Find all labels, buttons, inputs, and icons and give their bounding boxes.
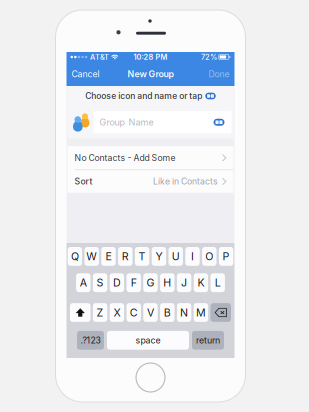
button[interactable]: T (135, 247, 149, 266)
staticText: Group Name (99, 117, 153, 128)
staticText: B (164, 306, 171, 319)
button[interactable]: I (185, 247, 200, 266)
button[interactable]: O (202, 247, 216, 266)
button[interactable]: space (107, 331, 189, 350)
button[interactable]: Cancel (66, 62, 104, 86)
staticText: Choose icon and name or tap (85, 91, 202, 101)
staticText: U (172, 250, 180, 263)
button[interactable]: .?123 (77, 331, 104, 350)
staticText: W (86, 250, 97, 263)
button[interactable]: E (101, 247, 116, 266)
staticText: 10:28 PM (133, 52, 167, 61)
button[interactable]: Done (203, 62, 234, 86)
staticText: No Contacts - Add Some (74, 153, 175, 163)
staticText: AT&T (90, 52, 109, 61)
staticText: S (97, 276, 104, 289)
staticText: C (130, 306, 138, 319)
button[interactable]: W (84, 247, 99, 266)
button[interactable]: X (110, 303, 124, 322)
button[interactable]: return (192, 331, 224, 350)
staticText: L (215, 276, 221, 289)
button[interactable]: Sort (67, 170, 233, 193)
button[interactable]: M (194, 303, 208, 322)
button[interactable]: Y (152, 247, 166, 266)
staticText: N (180, 306, 188, 319)
button[interactable]: G (143, 273, 158, 292)
button[interactable]: Pick from Contacts (213, 119, 231, 126)
button[interactable]: F (126, 273, 141, 292)
staticText: T (139, 250, 146, 263)
staticText: O (205, 250, 213, 263)
staticText: J (181, 276, 187, 289)
staticText: Done (208, 69, 229, 79)
button[interactable]: A (76, 273, 90, 292)
staticText: I (191, 250, 194, 263)
staticText: E (105, 250, 111, 263)
button[interactable]: D (110, 273, 124, 292)
button[interactable]: S (93, 273, 107, 292)
button[interactable]: Delete (210, 303, 231, 322)
staticText: F (131, 276, 137, 289)
staticText: M (196, 306, 206, 319)
staticText: R (122, 250, 129, 263)
staticText: H (163, 276, 171, 289)
button[interactable]: No Contacts - Add Some (67, 146, 233, 169)
staticText: Y (155, 250, 162, 263)
staticText: Q (71, 250, 79, 263)
staticText: X (113, 306, 120, 319)
staticText: D (113, 276, 121, 289)
staticText: Z (97, 306, 104, 319)
staticText: 72% (201, 52, 217, 61)
staticText: V (147, 306, 154, 319)
button[interactable]: Z (93, 303, 107, 322)
staticText: G (146, 276, 154, 289)
button[interactable]: Q (68, 247, 82, 266)
staticText: space (135, 335, 160, 346)
button[interactable]: R (118, 247, 132, 266)
staticText: A (80, 276, 87, 289)
button[interactable]: H (160, 273, 174, 292)
staticText: Cancel (71, 69, 99, 79)
button[interactable]: L (210, 273, 225, 292)
staticText: Sort (74, 176, 92, 187)
staticText: New Group (127, 69, 173, 79)
button[interactable]: J (177, 273, 191, 292)
button[interactable]: K (194, 273, 208, 292)
button[interactable]: U (168, 247, 183, 266)
button[interactable]: N (177, 303, 191, 322)
staticText: return (196, 335, 220, 346)
button[interactable]: B (160, 303, 174, 322)
staticText: K (197, 276, 204, 289)
staticText: Like in Contacts (153, 176, 218, 187)
staticText: P (223, 250, 230, 263)
button[interactable]: P (219, 247, 233, 266)
staticText: .?123 (80, 335, 100, 346)
button[interactable]: Shift (70, 303, 90, 322)
button[interactable]: C (126, 303, 141, 322)
button[interactable]: V (143, 303, 158, 322)
